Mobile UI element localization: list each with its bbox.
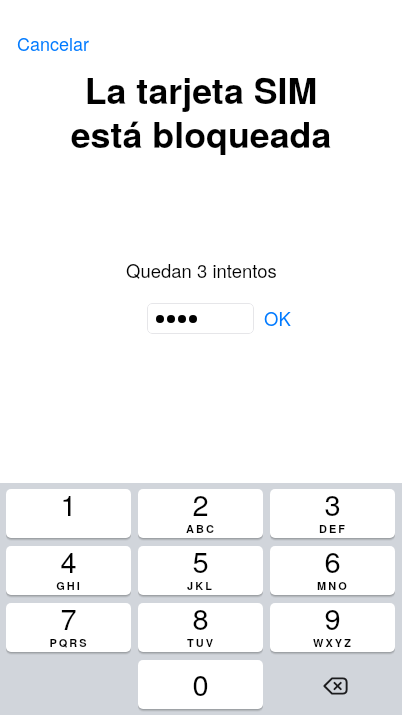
staticText: 8 (192, 603, 209, 639)
staticText: OK (264, 305, 291, 331)
staticText: MNO (317, 578, 349, 594)
staticText: JKL (187, 578, 214, 594)
button[interactable]: 4 (6, 546, 131, 595)
button[interactable]: 0 (138, 660, 263, 709)
button[interactable]: Delete (263, 660, 396, 709)
button[interactable]: 8 (138, 603, 263, 652)
button[interactable]: 3 (270, 489, 395, 538)
staticText: Quedan 3 intentos (126, 257, 277, 283)
staticText: 5 (192, 546, 209, 582)
staticText: ABC (186, 521, 216, 537)
staticText: La tarjeta SIM está bloqueada (16, 64, 386, 159)
button[interactable]: 1 (6, 489, 131, 538)
staticText: 6 (324, 546, 341, 582)
button[interactable]: OK (260, 302, 295, 334)
staticText: 9 (324, 603, 341, 639)
button[interactable]: 2 (138, 489, 263, 538)
button[interactable]: 7 (6, 603, 131, 652)
button[interactable] (147, 303, 254, 334)
staticText: 1 (60, 489, 77, 525)
staticText: 3 (324, 489, 341, 525)
button[interactable]: 6 (270, 546, 395, 595)
staticText: Cancelar (17, 30, 90, 56)
button[interactable]: Cancelar (5, 25, 102, 61)
staticText: 0 (192, 663, 209, 705)
staticText: 2 (192, 489, 209, 525)
staticText: WXYZ (313, 635, 353, 651)
staticText: DEF (319, 521, 347, 537)
staticText: 7 (60, 603, 77, 639)
staticText: PQRS (49, 635, 89, 651)
button[interactable]: 5 (138, 546, 263, 595)
staticText: 4 (60, 546, 77, 582)
staticText: TUV (187, 635, 215, 651)
staticText: GHI (56, 578, 82, 594)
button[interactable]: 9 (270, 603, 395, 652)
